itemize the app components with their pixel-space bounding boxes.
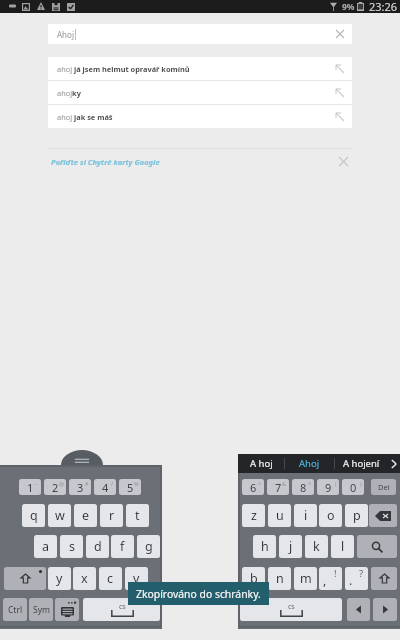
button[interactable]: w [48, 504, 71, 527]
button[interactable]: 9 [317, 479, 339, 495]
button[interactable]: Space [83, 598, 160, 621]
button[interactable]: ahojky [48, 81, 352, 104]
button[interactable]: 4 [94, 479, 116, 495]
staticText: 3 [77, 480, 84, 495]
button[interactable]: x [73, 567, 96, 590]
staticText: Zkopírováno do schránky. [136, 587, 261, 601]
button[interactable]: 2 [44, 479, 66, 495]
staticText: z [251, 507, 257, 524]
button[interactable]: z [242, 504, 265, 527]
button[interactable]: b [242, 567, 265, 590]
button[interactable]: Move left [347, 598, 370, 621]
button[interactable]: Space [240, 598, 342, 621]
button[interactable]: ahoj jak se máš [48, 105, 352, 128]
staticText: Sym [33, 604, 50, 616]
button[interactable]: t [126, 504, 149, 527]
button[interactable]: g [137, 535, 160, 558]
staticText: Pořiďte si Chytré karty Google [51, 157, 160, 167]
button[interactable]: Comma [319, 567, 342, 590]
button[interactable]: a [34, 535, 57, 558]
button[interactable]: Sym [29, 598, 53, 621]
button[interactable]: o [319, 504, 342, 527]
button[interactable]: d [86, 535, 109, 558]
button[interactable]: A hojení [335, 454, 387, 473]
button[interactable]: s [60, 535, 83, 558]
button[interactable]: Keyboard handle [61, 450, 103, 465]
staticText: h [261, 538, 269, 555]
staticText: a [42, 538, 50, 555]
button[interactable]: n [268, 567, 291, 590]
button[interactable]: Del [371, 479, 396, 495]
button[interactable]: Switch keyboard [55, 598, 79, 621]
button[interactable]: v [125, 567, 148, 590]
staticText: cs [119, 602, 126, 612]
button[interactable]: m [294, 567, 317, 590]
button[interactable]: Ahoj [48, 24, 352, 44]
button[interactable]: Shift [4, 567, 46, 590]
staticText: # [85, 480, 89, 487]
button[interactable]: 7 [267, 479, 289, 495]
staticText: ~ [35, 480, 39, 487]
button[interactable]: k [305, 535, 328, 558]
button[interactable]: ahoj já jsem helmut opravář komínů [48, 57, 352, 80]
button[interactable]: y [48, 567, 71, 590]
staticText: ^ [258, 480, 262, 487]
button[interactable]: r [100, 504, 123, 527]
staticText: m [300, 570, 312, 587]
staticText: b [250, 570, 258, 587]
other: Clear query [336, 30, 344, 38]
staticText: w [55, 507, 65, 524]
button[interactable]: Ctrl [3, 598, 27, 621]
button[interactable]: A hoj [238, 454, 284, 473]
button[interactable]: 6 [242, 479, 264, 495]
button[interactable]: Backspace [369, 504, 397, 527]
staticText: ? [359, 567, 364, 580]
button[interactable]: Ahoj [285, 454, 334, 473]
button[interactable]: l [331, 535, 354, 558]
button[interactable]: Search [357, 535, 397, 558]
button[interactable]: f [111, 535, 134, 558]
staticText: Ctrl [8, 604, 23, 616]
button[interactable]: 1 [19, 479, 41, 495]
staticText: ! [334, 567, 337, 580]
staticText: 9 [325, 480, 332, 495]
button[interactable]: 5 [119, 479, 141, 495]
button[interactable]: More suggestions [387, 454, 400, 473]
button[interactable]: h [253, 535, 276, 558]
staticText: 5 [127, 480, 134, 495]
button[interactable]: 8 [292, 479, 314, 495]
staticText: % [134, 480, 139, 487]
button[interactable]: Move right [373, 598, 397, 621]
staticText: & [282, 480, 287, 487]
staticText: i [304, 507, 308, 524]
staticText: ( [335, 480, 337, 487]
button[interactable]: 3 [69, 479, 91, 495]
button[interactable]: j [279, 535, 302, 558]
button[interactable]: q [22, 504, 45, 527]
staticText: q [30, 507, 38, 524]
staticText: t [135, 507, 140, 524]
staticText: ahoj já jsem helmut opravář komínů [57, 64, 190, 74]
staticText: p [353, 507, 361, 524]
button[interactable]: c [99, 567, 122, 590]
button[interactable]: i [294, 504, 317, 527]
staticText: A hojení [343, 457, 380, 470]
button[interactable]: u [268, 504, 291, 527]
button[interactable]: Period [345, 567, 368, 590]
button[interactable]: Pořiďte si Chytré karty Google [48, 148, 352, 174]
staticText: l [341, 538, 345, 555]
other: Dismiss [339, 157, 348, 166]
other: Insert suggestion [335, 112, 345, 122]
staticText: . [349, 572, 353, 589]
staticText: Ahoj [299, 457, 320, 470]
staticText: e [82, 507, 90, 524]
staticText: d [94, 538, 102, 555]
staticText: 2 [52, 480, 59, 495]
button[interactable]: e [74, 504, 97, 527]
staticText: ahoj jak se máš [57, 112, 113, 122]
button[interactable]: p [345, 504, 368, 527]
staticText: ahojky [57, 88, 81, 98]
button[interactable]: 0 [342, 479, 364, 495]
button[interactable]: Shift [371, 567, 397, 590]
staticText: x [81, 570, 88, 587]
